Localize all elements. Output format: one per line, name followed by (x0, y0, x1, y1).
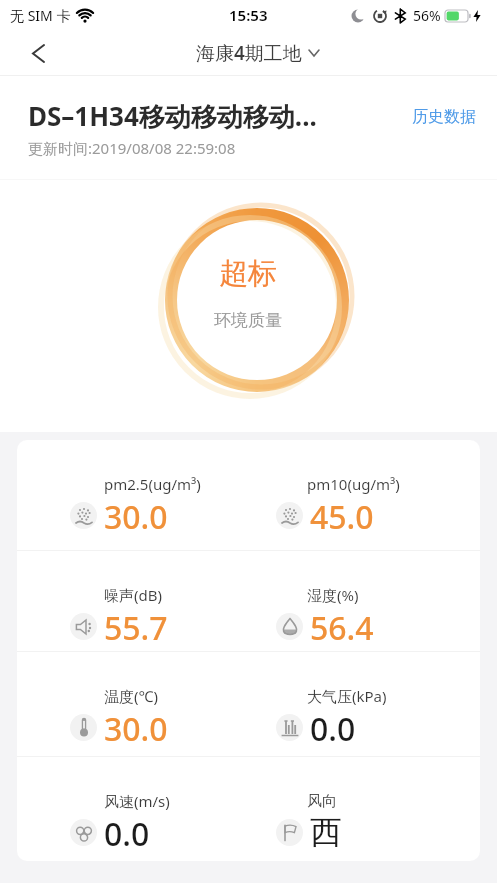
staticText: 更新时间:2019/08/08 22:59:08 (28, 138, 236, 158)
button[interactable] (20, 35, 56, 71)
staticText: 55.7 (104, 606, 168, 646)
staticText: 无 SIM 卡 (10, 6, 71, 25)
staticText: 56% (413, 6, 441, 25)
staticText: 环境质量 (214, 310, 282, 331)
staticText: pm10(ug/m³) (307, 474, 400, 494)
staticText: 西 (310, 812, 342, 852)
staticText: 30.0 (104, 495, 168, 535)
staticText: 风向 (307, 792, 337, 811)
staticText: 15:53 (229, 5, 268, 25)
staticText: pm2.5(ug/m³) (104, 474, 201, 494)
staticText: 56.4 (310, 606, 374, 646)
staticText: 0.0 (310, 707, 356, 747)
button[interactable]: 海康4期工地 (196, 40, 319, 66)
button[interactable]: 历史数据 (412, 107, 476, 127)
staticText: 超标 (219, 255, 277, 292)
staticText: 大气压(kPa) (307, 686, 387, 706)
staticText: DS–1H34移动移动移动... (28, 98, 388, 134)
staticText: 历史数据 (412, 107, 476, 127)
staticText: 海康4期工地 (196, 40, 302, 66)
staticText: 湿度(%) (307, 585, 359, 605)
staticText: 噪声(dB) (104, 585, 162, 605)
staticText: 0.0 (104, 812, 150, 852)
staticText: 45.0 (310, 495, 374, 535)
staticText: 风速(m/s) (104, 791, 170, 811)
staticText: 30.0 (104, 707, 168, 747)
staticText: 温度(℃) (104, 686, 158, 706)
